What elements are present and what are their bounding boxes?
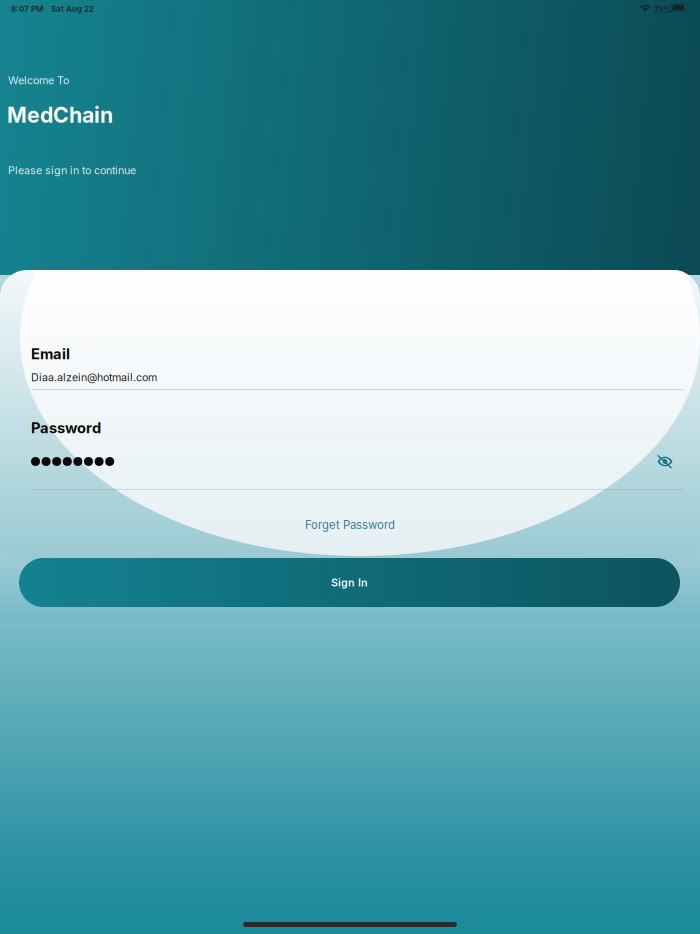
staticText: 8:07 PM <box>11 4 43 14</box>
staticText: Email <box>31 345 70 363</box>
staticText: Diaa.alzein@hotmail.com <box>31 371 157 384</box>
button[interactable]: Sign In <box>19 558 680 607</box>
button[interactable]: Show password <box>647 446 683 478</box>
button[interactable]: Forget Password <box>0 512 700 538</box>
staticText: MedChain <box>7 102 113 128</box>
staticText: Please sign in to continue <box>8 164 136 177</box>
staticText: Password <box>31 419 101 437</box>
staticText: Sign In <box>331 576 368 589</box>
staticText: Sat Aug 22 <box>51 4 94 14</box>
staticText: Forget Password <box>305 518 395 532</box>
staticText: 71% <box>654 4 672 15</box>
staticText: Welcome To <box>8 74 69 87</box>
